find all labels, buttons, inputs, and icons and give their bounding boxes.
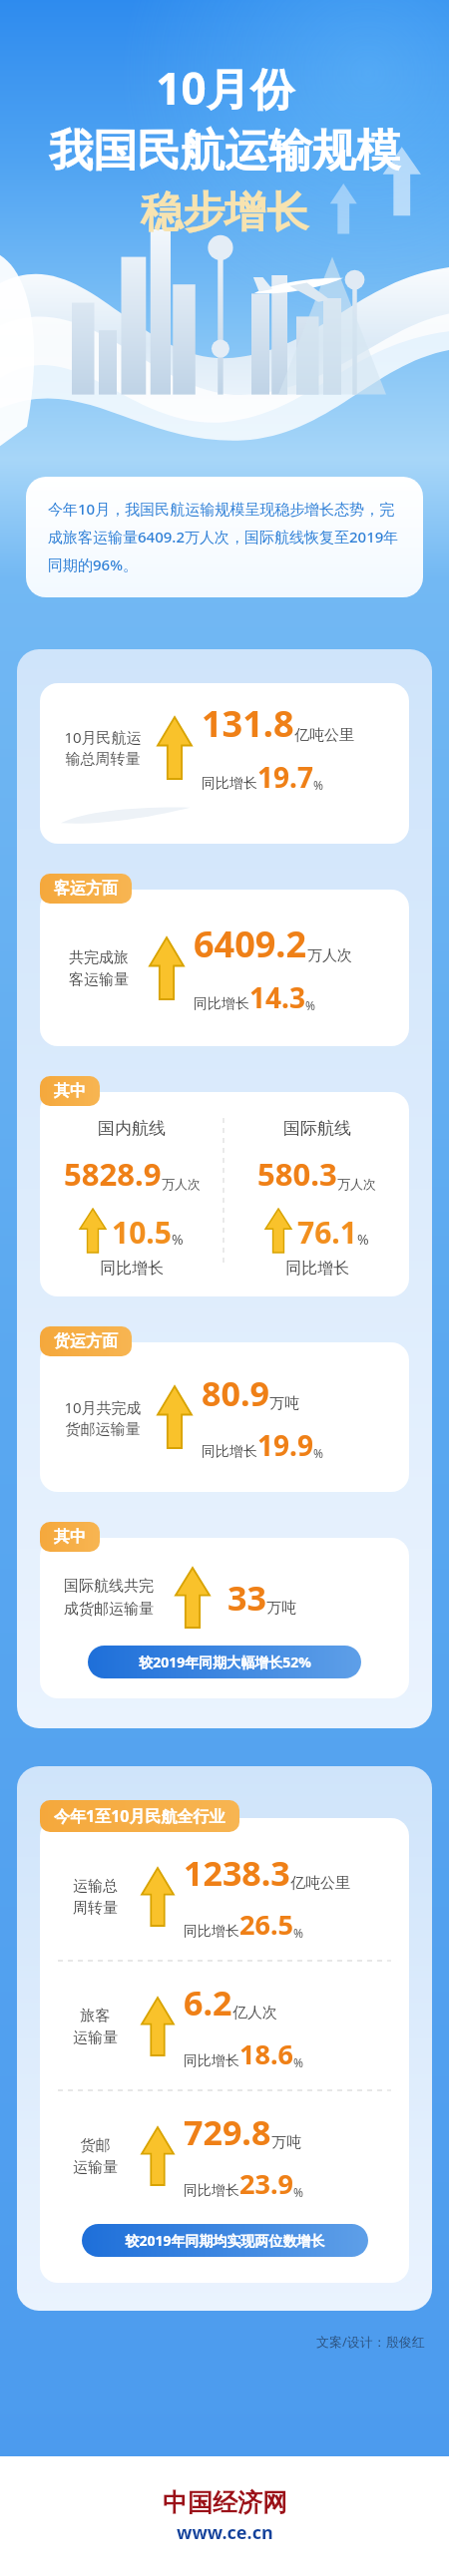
staticText: 10月份	[156, 58, 294, 118]
staticText: 23.9	[239, 2165, 293, 2202]
button[interactable]: 运输总 周转量	[40, 1818, 409, 2283]
staticText: 10.5	[112, 1212, 172, 1253]
staticText: 今年10月，我国民航运输规模呈现稳步增长态势，完成旅客运输量6409.2万人次，…	[48, 499, 401, 575]
staticText: 客运方面	[54, 879, 118, 899]
staticText: 国内航线	[98, 1118, 166, 1139]
button[interactable]: 国际航线共完 成货邮运输量	[40, 1538, 409, 1698]
staticText: 131.8	[202, 699, 294, 748]
staticText: 10月共完成 货邮运输量	[64, 1397, 142, 1438]
button[interactable]: 其中	[40, 1076, 100, 1106]
staticText: 76.1	[297, 1212, 357, 1253]
staticText: 5828.9	[64, 1153, 162, 1195]
staticText: %	[172, 1230, 184, 1249]
staticText: 文案/设计：殷俊红	[316, 2333, 425, 2351]
staticText: 亿吨公里	[294, 726, 354, 745]
button[interactable]: 国内航线	[40, 1092, 409, 1296]
staticText: 今年1至10月民航全行业	[54, 1805, 225, 1827]
staticText: 19.9	[257, 1426, 313, 1464]
staticText: %	[293, 2184, 303, 2200]
staticText: 货邮 运输量	[73, 2136, 118, 2176]
staticText: 同比增长	[184, 2182, 239, 2200]
staticText: 6.2	[184, 1980, 232, 2025]
staticText: 6409.2	[194, 920, 307, 968]
staticText: 国际航线共完 成货邮运输量	[64, 1577, 154, 1619]
staticText: 同比增长	[194, 995, 249, 1013]
staticText: 万吨	[266, 1599, 296, 1618]
other: 中国经济网 www.ce.cn	[163, 2487, 287, 2545]
staticText: 货运方面	[54, 1331, 118, 1351]
button[interactable]: 今年10月，我国民航运输规模呈现稳步增长态势，完成旅客运输量6409.2万人次，…	[26, 477, 423, 597]
staticText: 其中	[54, 1527, 86, 1547]
staticText: 10月民航运 输总周转量	[64, 727, 142, 768]
staticText: 729.8	[184, 2109, 271, 2155]
staticText: 同比增长	[202, 775, 257, 793]
staticText: 14.3	[249, 978, 305, 1016]
staticText: 亿人次	[232, 2004, 277, 2023]
staticText: 同比增长	[285, 1259, 349, 1279]
staticText: 我国民航运输规模	[49, 124, 400, 179]
button[interactable]: 较2019年同期大幅增长52%	[88, 1646, 361, 1678]
staticText: 26.5	[239, 1906, 293, 1943]
staticText: 万人次	[307, 946, 352, 965]
staticText: 国际航线	[283, 1118, 351, 1139]
staticText: 运输总 周转量	[73, 1877, 118, 1917]
staticText: 同比增长	[184, 1923, 239, 1941]
staticText: 同比增长	[100, 1259, 164, 1279]
staticText: 580.3	[257, 1153, 337, 1195]
staticText: 较2019年同期大幅增长52%	[139, 1653, 311, 1671]
staticText: 80.9	[202, 1370, 269, 1416]
button[interactable]: 货运方面	[40, 1326, 132, 1356]
staticText: %	[305, 997, 315, 1013]
staticText: 稳步增长	[141, 186, 308, 239]
staticText: 亿吨公里	[290, 1874, 350, 1893]
button[interactable]: 10月民航运 输总周转量	[40, 683, 409, 844]
staticText: 1238.3	[184, 1850, 290, 1896]
button[interactable]: 较2019年同期均实现两位数增长	[82, 2224, 368, 2257]
staticText: 同比增长	[202, 1443, 257, 1461]
staticText: www.ce.cn	[177, 2520, 273, 2545]
staticText: %	[313, 777, 323, 793]
staticText: 万吨	[269, 1394, 299, 1413]
staticText: %	[293, 2054, 303, 2070]
staticText: 其中	[54, 1081, 86, 1101]
staticText: 33	[227, 1575, 266, 1621]
button[interactable]: 今年1至10月民航全行业	[40, 1800, 239, 1832]
staticText: 万吨	[271, 2133, 301, 2152]
staticText: %	[313, 1445, 323, 1461]
staticText: 共完成旅 客运输量	[69, 948, 129, 988]
button[interactable]: 客运方面	[40, 874, 132, 904]
button[interactable]: 共完成旅 客运输量	[40, 890, 409, 1046]
staticText: 较2019年同期均实现两位数增长	[125, 2231, 325, 2250]
staticText: 万人次	[162, 1176, 201, 1192]
button[interactable]: 其中	[40, 1522, 100, 1552]
staticText: 旅客 运输量	[73, 2007, 118, 2046]
button[interactable]: 10月共完成 货邮运输量	[40, 1342, 409, 1492]
staticText: 19.7	[257, 758, 313, 796]
staticText: %	[293, 1925, 303, 1941]
staticText: 中国经济网	[163, 2487, 287, 2518]
staticText: %	[357, 1230, 369, 1249]
staticText: 同比增长	[184, 2052, 239, 2070]
staticText: 万人次	[337, 1176, 376, 1192]
staticText: 18.6	[239, 2035, 293, 2072]
